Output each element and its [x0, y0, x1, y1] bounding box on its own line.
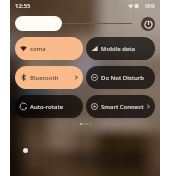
button[interactable]: Do Not Disturb [86, 66, 155, 89]
staticText: 90% [145, 3, 155, 10]
staticText: Do Not Disturb [101, 74, 145, 82]
button[interactable]: Auto-rotate [15, 95, 83, 118]
staticText: Mobile data [101, 45, 136, 53]
staticText: Auto-rotate [30, 103, 64, 111]
button[interactable]: soma [15, 37, 83, 60]
staticText: soma [30, 45, 46, 53]
button[interactable]: Mobile data [86, 37, 155, 60]
button[interactable]: Smart Connect [86, 95, 155, 118]
staticText: 12:55 [15, 2, 31, 10]
button[interactable]: Brightness [15, 16, 132, 31]
button[interactable]: Bluetooth [15, 66, 83, 89]
staticText: Smart Connect [101, 103, 144, 111]
staticText: Bluetooth [30, 74, 59, 82]
button[interactable]: Power [141, 17, 155, 31]
